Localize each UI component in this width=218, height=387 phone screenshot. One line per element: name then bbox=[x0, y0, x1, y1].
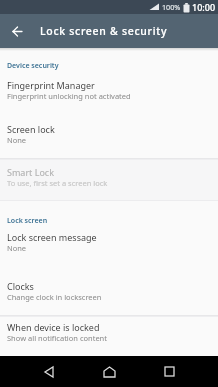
staticText: None bbox=[7, 135, 27, 145]
button[interactable] bbox=[73, 356, 145, 387]
staticText: Lock screen message bbox=[7, 231, 97, 243]
button[interactable]: When device is locked bbox=[0, 315, 218, 357]
staticText: 10:00 bbox=[192, 1, 216, 13]
button[interactable]: Smart Lock bbox=[0, 160, 218, 200]
button[interactable]: Fingerprint Manager bbox=[0, 73, 218, 113]
staticText: 100% bbox=[162, 2, 181, 12]
button[interactable] bbox=[145, 356, 218, 387]
staticText: Lock screen bbox=[7, 216, 48, 226]
staticText: Clocks bbox=[7, 280, 34, 292]
staticText: Fingerprint unlocking not activated bbox=[7, 91, 131, 101]
staticText: Screen lock bbox=[7, 123, 55, 135]
button[interactable]: Screen lock bbox=[0, 117, 218, 157]
staticText: Lock screen & security bbox=[40, 24, 168, 38]
staticText: Show all notification content bbox=[7, 333, 107, 343]
staticText: Fingerprint Manager bbox=[7, 79, 95, 91]
staticText: None bbox=[7, 243, 27, 253]
staticText: Device security bbox=[7, 61, 59, 71]
button[interactable]: Lock screen message bbox=[0, 225, 218, 265]
staticText: Change clock in lockscreen bbox=[7, 292, 102, 302]
button[interactable] bbox=[0, 14, 34, 48]
staticText: To use, first set a screen lock bbox=[7, 178, 108, 188]
staticText: When device is locked bbox=[7, 321, 100, 333]
button[interactable] bbox=[0, 356, 73, 387]
button[interactable]: Clocks bbox=[0, 274, 218, 314]
staticText: Smart Lock bbox=[7, 166, 54, 178]
